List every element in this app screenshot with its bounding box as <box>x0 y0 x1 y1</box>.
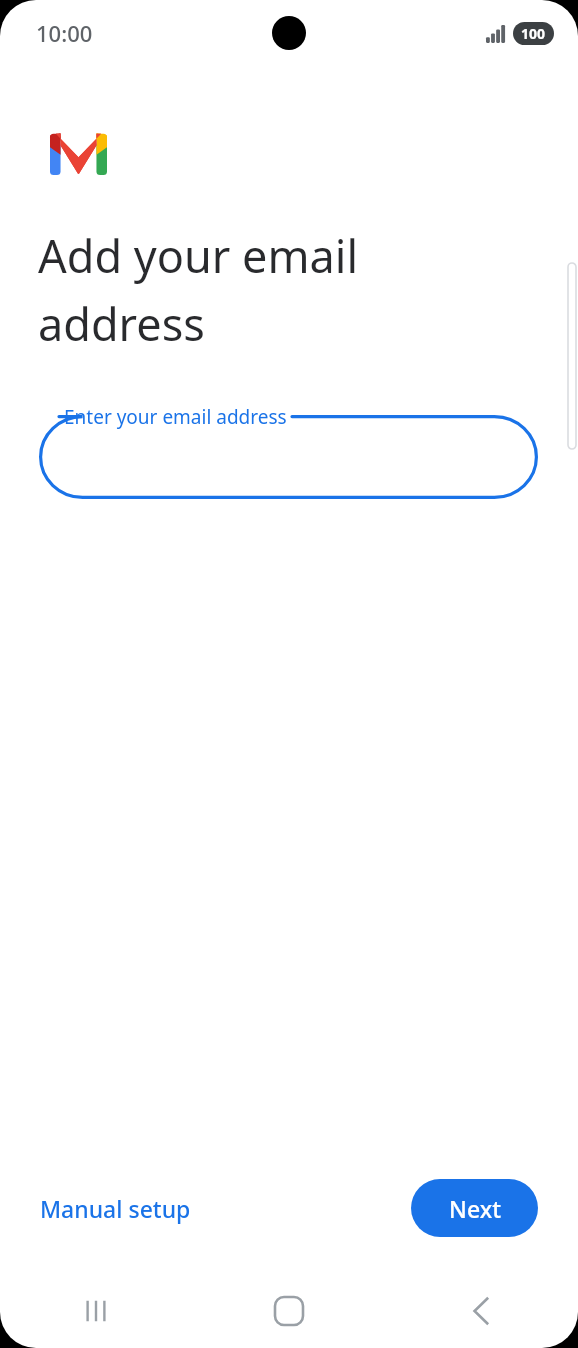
staticText: Enter your email address <box>64 404 287 430</box>
staticText: 100 <box>521 24 546 43</box>
button[interactable]: Home <box>192 1274 385 1348</box>
button[interactable]: Back <box>385 1274 578 1348</box>
button[interactable]: Manual setup <box>38 1185 193 1232</box>
button[interactable]: Next <box>411 1179 538 1237</box>
staticText: 10:00 <box>36 18 93 48</box>
staticText: Add your email address <box>38 225 358 355</box>
staticText: Next <box>449 1193 501 1224</box>
button[interactable]: Recent apps <box>0 1274 192 1348</box>
staticText: Manual setup <box>40 1193 191 1224</box>
button[interactable]: Enter your email address <box>39 399 538 499</box>
